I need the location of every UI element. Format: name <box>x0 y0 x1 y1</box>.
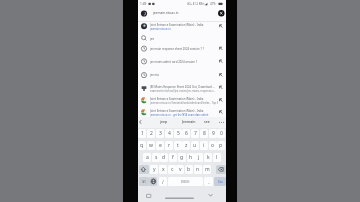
staticText: jee nta <box>150 73 159 77</box>
button[interactable] <box>138 44 226 56</box>
button[interactable]: f <box>169 153 177 162</box>
button[interactable]: w <box>147 141 155 150</box>
button[interactable] <box>139 165 149 174</box>
staticText: 6 <box>185 130 188 137</box>
staticText: 1 <box>141 130 144 137</box>
staticText: p <box>219 142 223 149</box>
staticText: examsnet.in/school/jee-mains/jee-mains-r… <box>150 89 216 93</box>
staticText: Joint Entrance Examination (Main) - Indi… <box>150 109 204 113</box>
button[interactable]: i <box>200 141 208 150</box>
button[interactable]: n <box>194 165 202 174</box>
button[interactable]: g <box>178 153 186 162</box>
staticText: u <box>193 142 197 149</box>
button[interactable]: q <box>138 141 146 150</box>
button[interactable]: l <box>213 153 221 162</box>
button[interactable]: x <box>159 165 167 174</box>
button[interactable]: o <box>209 141 217 150</box>
staticText: x <box>162 166 165 173</box>
staticText: w <box>149 142 153 149</box>
staticText: f <box>172 154 174 161</box>
staticText: k <box>207 154 210 161</box>
button[interactable] <box>149 177 157 186</box>
button[interactable] <box>138 34 226 44</box>
staticText: see <box>204 119 210 124</box>
staticText: j <box>198 154 200 161</box>
button[interactable]: y <box>150 165 158 174</box>
staticText: jee <box>150 37 155 41</box>
staticText: 4G+ 41.2 KB/s <box>187 2 205 6</box>
staticText: 4 <box>168 130 171 137</box>
button[interactable]: t <box>174 141 182 150</box>
button[interactable] <box>138 69 226 82</box>
button[interactable]: k <box>204 153 212 162</box>
button[interactable]: / <box>159 177 167 186</box>
staticText: 47% <box>210 2 216 6</box>
button[interactable]: 1 <box>138 129 146 138</box>
button[interactable]: 4 <box>165 129 173 138</box>
button[interactable]: h <box>187 153 195 162</box>
button[interactable]: 6 <box>182 129 190 138</box>
staticText: 7 <box>194 130 197 137</box>
button[interactable]: 2 <box>147 129 155 138</box>
button[interactable] <box>138 56 226 68</box>
button[interactable] <box>138 83 226 96</box>
staticText: e <box>159 142 162 149</box>
staticText: jeemain.nta.ac.in - get the NTA exam dat… <box>150 113 209 117</box>
button[interactable]: 8 <box>200 129 208 138</box>
button[interactable]: EN(US) <box>168 177 203 186</box>
button[interactable]: j <box>195 153 203 162</box>
staticText: EN(US) <box>181 180 190 184</box>
button[interactable]: p <box>217 141 225 150</box>
staticText: 3 <box>159 130 162 137</box>
staticText: q <box>140 142 144 149</box>
button[interactable]: s <box>152 153 160 162</box>
button[interactable] <box>201 117 217 128</box>
button[interactable] <box>138 95 226 107</box>
staticText: JEE Mains Response Sheet 2024 Out, Downl… <box>150 85 215 89</box>
staticText: h <box>189 154 193 161</box>
button[interactable]: d <box>160 153 168 162</box>
staticText: i <box>203 142 205 149</box>
staticText: y <box>153 166 156 173</box>
staticText: Joint Entrance Examination (Main) - Indi… <box>150 97 204 101</box>
button[interactable]: 0 <box>217 129 225 138</box>
button[interactable] <box>138 22 226 34</box>
button[interactable]: 5 <box>174 129 182 138</box>
button[interactable] <box>156 117 174 128</box>
button[interactable]: e <box>156 141 164 150</box>
button[interactable] <box>216 165 226 174</box>
staticText: 0 <box>220 130 223 137</box>
button[interactable]: 3 <box>156 129 164 138</box>
button[interactable]: 7 <box>191 129 199 138</box>
staticText: b <box>187 166 191 173</box>
button[interactable]: u <box>191 141 199 150</box>
staticText: 9 <box>212 130 215 137</box>
staticText: 2 <box>150 130 153 137</box>
button[interactable]: z <box>182 141 190 150</box>
staticText: Jeemain <box>182 119 196 124</box>
button[interactable]: Go <box>214 177 226 186</box>
button[interactable]: b <box>185 165 193 174</box>
staticText: 5 <box>177 130 180 137</box>
button[interactable] <box>138 107 226 119</box>
button[interactable] <box>178 117 200 128</box>
staticText: 8 <box>203 130 206 137</box>
button[interactable]: v <box>176 165 184 174</box>
staticText: r <box>168 142 171 149</box>
staticText: t <box>177 142 179 149</box>
staticText: _ <box>208 179 210 184</box>
button[interactable] <box>138 8 226 20</box>
staticText: n <box>196 166 200 173</box>
button[interactable]: a <box>143 153 151 162</box>
button[interactable]: r <box>165 141 173 150</box>
staticText: g <box>180 154 184 161</box>
button[interactable]: m <box>203 165 211 174</box>
staticText: / <box>162 179 164 185</box>
staticText: Go <box>218 179 223 184</box>
button[interactable]: 9 <box>209 129 217 138</box>
button[interactable]: _ <box>204 177 213 186</box>
staticText: c <box>171 166 174 173</box>
button[interactable]: !#1 <box>139 177 149 186</box>
staticText: d <box>162 154 166 161</box>
button[interactable]: c <box>168 165 176 174</box>
